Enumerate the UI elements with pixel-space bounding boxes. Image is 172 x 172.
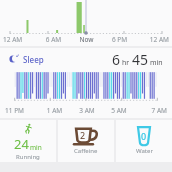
staticText: 12 AM xyxy=(3,35,37,44)
button[interactable]: Caffeine xyxy=(58,120,114,162)
button[interactable]: 12 AM xyxy=(0,0,172,46)
other: Water xyxy=(134,125,154,147)
staticText: 6 AM xyxy=(37,35,70,44)
staticText: min xyxy=(30,143,42,152)
staticText: Now xyxy=(70,35,103,44)
staticText: 45 xyxy=(132,50,149,69)
button[interactable]: Running xyxy=(0,120,56,162)
other: Sleep xyxy=(9,54,19,64)
staticText: Sleep xyxy=(23,54,44,65)
staticText: 12 AM xyxy=(136,35,169,44)
other: Running xyxy=(23,123,34,134)
staticText: 24 xyxy=(14,135,29,153)
button[interactable]: Water xyxy=(116,120,172,162)
staticText: min xyxy=(150,58,163,68)
staticText: 6 xyxy=(112,50,121,69)
other: Caffeine xyxy=(71,125,101,147)
staticText: 1 AM xyxy=(38,106,71,115)
staticText: 3 AM xyxy=(71,106,103,115)
staticText: Running xyxy=(16,153,40,161)
staticText: 0 xyxy=(141,130,147,142)
staticText: Caffeine xyxy=(74,147,98,155)
staticText: hr xyxy=(122,58,130,68)
staticText: 5 AM xyxy=(103,106,135,115)
button[interactable]: Sleep xyxy=(0,48,172,118)
staticText: 2 xyxy=(80,129,86,141)
staticText: 7 AM xyxy=(135,106,167,115)
staticText: Water xyxy=(136,147,153,155)
staticText: 6 PM xyxy=(103,35,136,44)
staticText: 11 PM xyxy=(5,106,38,115)
